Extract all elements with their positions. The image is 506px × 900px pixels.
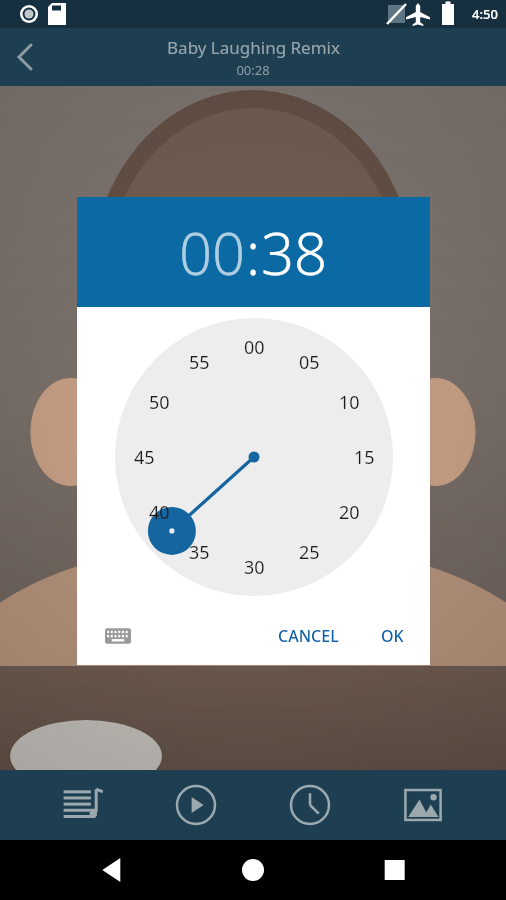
- button[interactable]: Play: [165, 774, 227, 836]
- button[interactable]: CANCEL: [264, 615, 353, 657]
- staticText: 30: [244, 555, 265, 580]
- staticText: 4:50: [472, 5, 498, 23]
- button[interactable]: Back: [0, 32, 50, 82]
- button[interactable]: Image: [392, 774, 454, 836]
- staticText: 45: [134, 445, 155, 470]
- staticText: 55: [189, 350, 210, 375]
- staticText: 15: [354, 445, 375, 470]
- staticText: 10: [339, 390, 360, 415]
- button[interactable]: 00: [179, 213, 246, 292]
- button[interactable]: OK: [367, 615, 418, 657]
- staticText: Baby Laughing Remix: [167, 36, 340, 59]
- staticText: 00:28: [236, 61, 270, 79]
- button[interactable]: Playlist: [52, 774, 114, 836]
- staticText: 00: [244, 335, 265, 360]
- staticText: 35: [189, 540, 210, 565]
- staticText: 20: [339, 500, 360, 525]
- staticText: 40: [149, 500, 170, 525]
- button[interactable]: 38: [261, 213, 328, 292]
- button[interactable]: Timer: [279, 774, 341, 836]
- button[interactable]: Switch to keyboard input: [101, 619, 135, 653]
- staticText: OK: [381, 625, 404, 647]
- staticText: :: [246, 213, 261, 292]
- staticText: CANCEL: [278, 625, 339, 647]
- staticText: 05: [299, 350, 320, 375]
- staticText: 25: [299, 540, 320, 565]
- staticText: 50: [149, 390, 170, 415]
